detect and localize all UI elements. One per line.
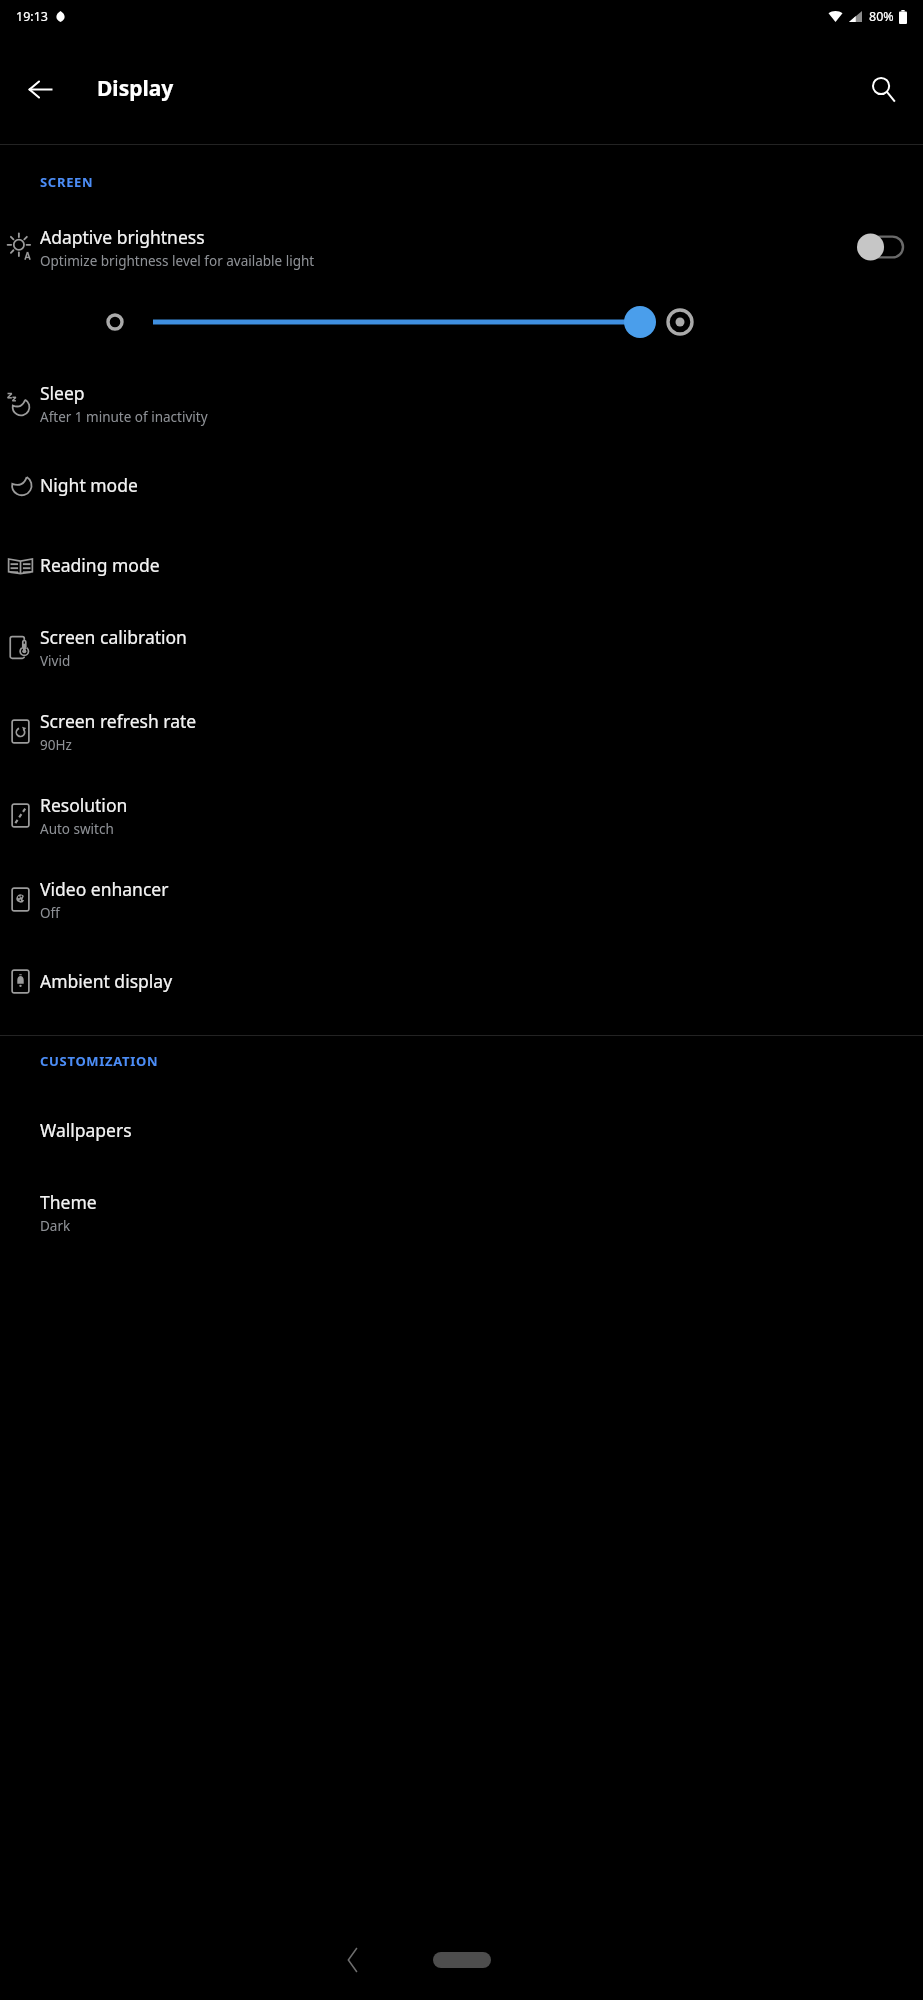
staticText: 90Hz [40, 736, 72, 754]
staticText: 19:13 [16, 8, 48, 25]
staticText: Ambient display [40, 969, 173, 993]
staticText: Vivid [40, 652, 71, 670]
staticText: Wallpapers [40, 1118, 132, 1142]
staticText: After 1 minute of inactivity [40, 408, 208, 426]
staticText: Display [97, 74, 174, 103]
staticText: CUSTOMIZATION [40, 1052, 159, 1070]
button[interactable]: Screen calibration [0, 605, 923, 689]
button[interactable]: Back [12, 61, 68, 117]
button[interactable] [855, 227, 905, 267]
button[interactable]: Screen refresh rate [0, 689, 923, 773]
staticText: Auto switch [40, 820, 114, 838]
staticText: Screen calibration [40, 625, 187, 649]
button[interactable]: Wallpapers [0, 1090, 923, 1170]
staticText: Resolution [40, 793, 128, 817]
staticText: Dark [40, 1217, 71, 1235]
staticText: Optimize brightness level for available … [40, 252, 315, 270]
staticText: 80% [869, 8, 894, 25]
staticText: Video enhancer [40, 877, 169, 901]
staticText: Screen refresh rate [40, 709, 197, 733]
staticText: Night mode [40, 473, 138, 497]
button[interactable]: Theme [0, 1170, 923, 1254]
button[interactable]: Resolution [0, 773, 923, 857]
button[interactable]: Adaptive brightness [0, 211, 923, 283]
button[interactable]: Brightness level [0, 283, 923, 361]
staticText: Off [40, 904, 60, 922]
button[interactable]: Search [855, 61, 911, 117]
staticText: SCREEN [40, 173, 94, 191]
button[interactable]: Back [330, 1938, 374, 1982]
button[interactable]: Ambient display [0, 941, 923, 1021]
staticText: Reading mode [40, 553, 160, 577]
button[interactable]: Sleep [0, 361, 923, 445]
button[interactable]: Home [430, 1948, 494, 1972]
staticText: Theme [40, 1190, 97, 1214]
button[interactable]: Night mode [0, 445, 923, 525]
button[interactable]: Reading mode [0, 525, 923, 605]
staticText: Adaptive brightness [40, 225, 205, 249]
staticText: Sleep [40, 381, 85, 405]
button[interactable]: Video enhancer [0, 857, 923, 941]
